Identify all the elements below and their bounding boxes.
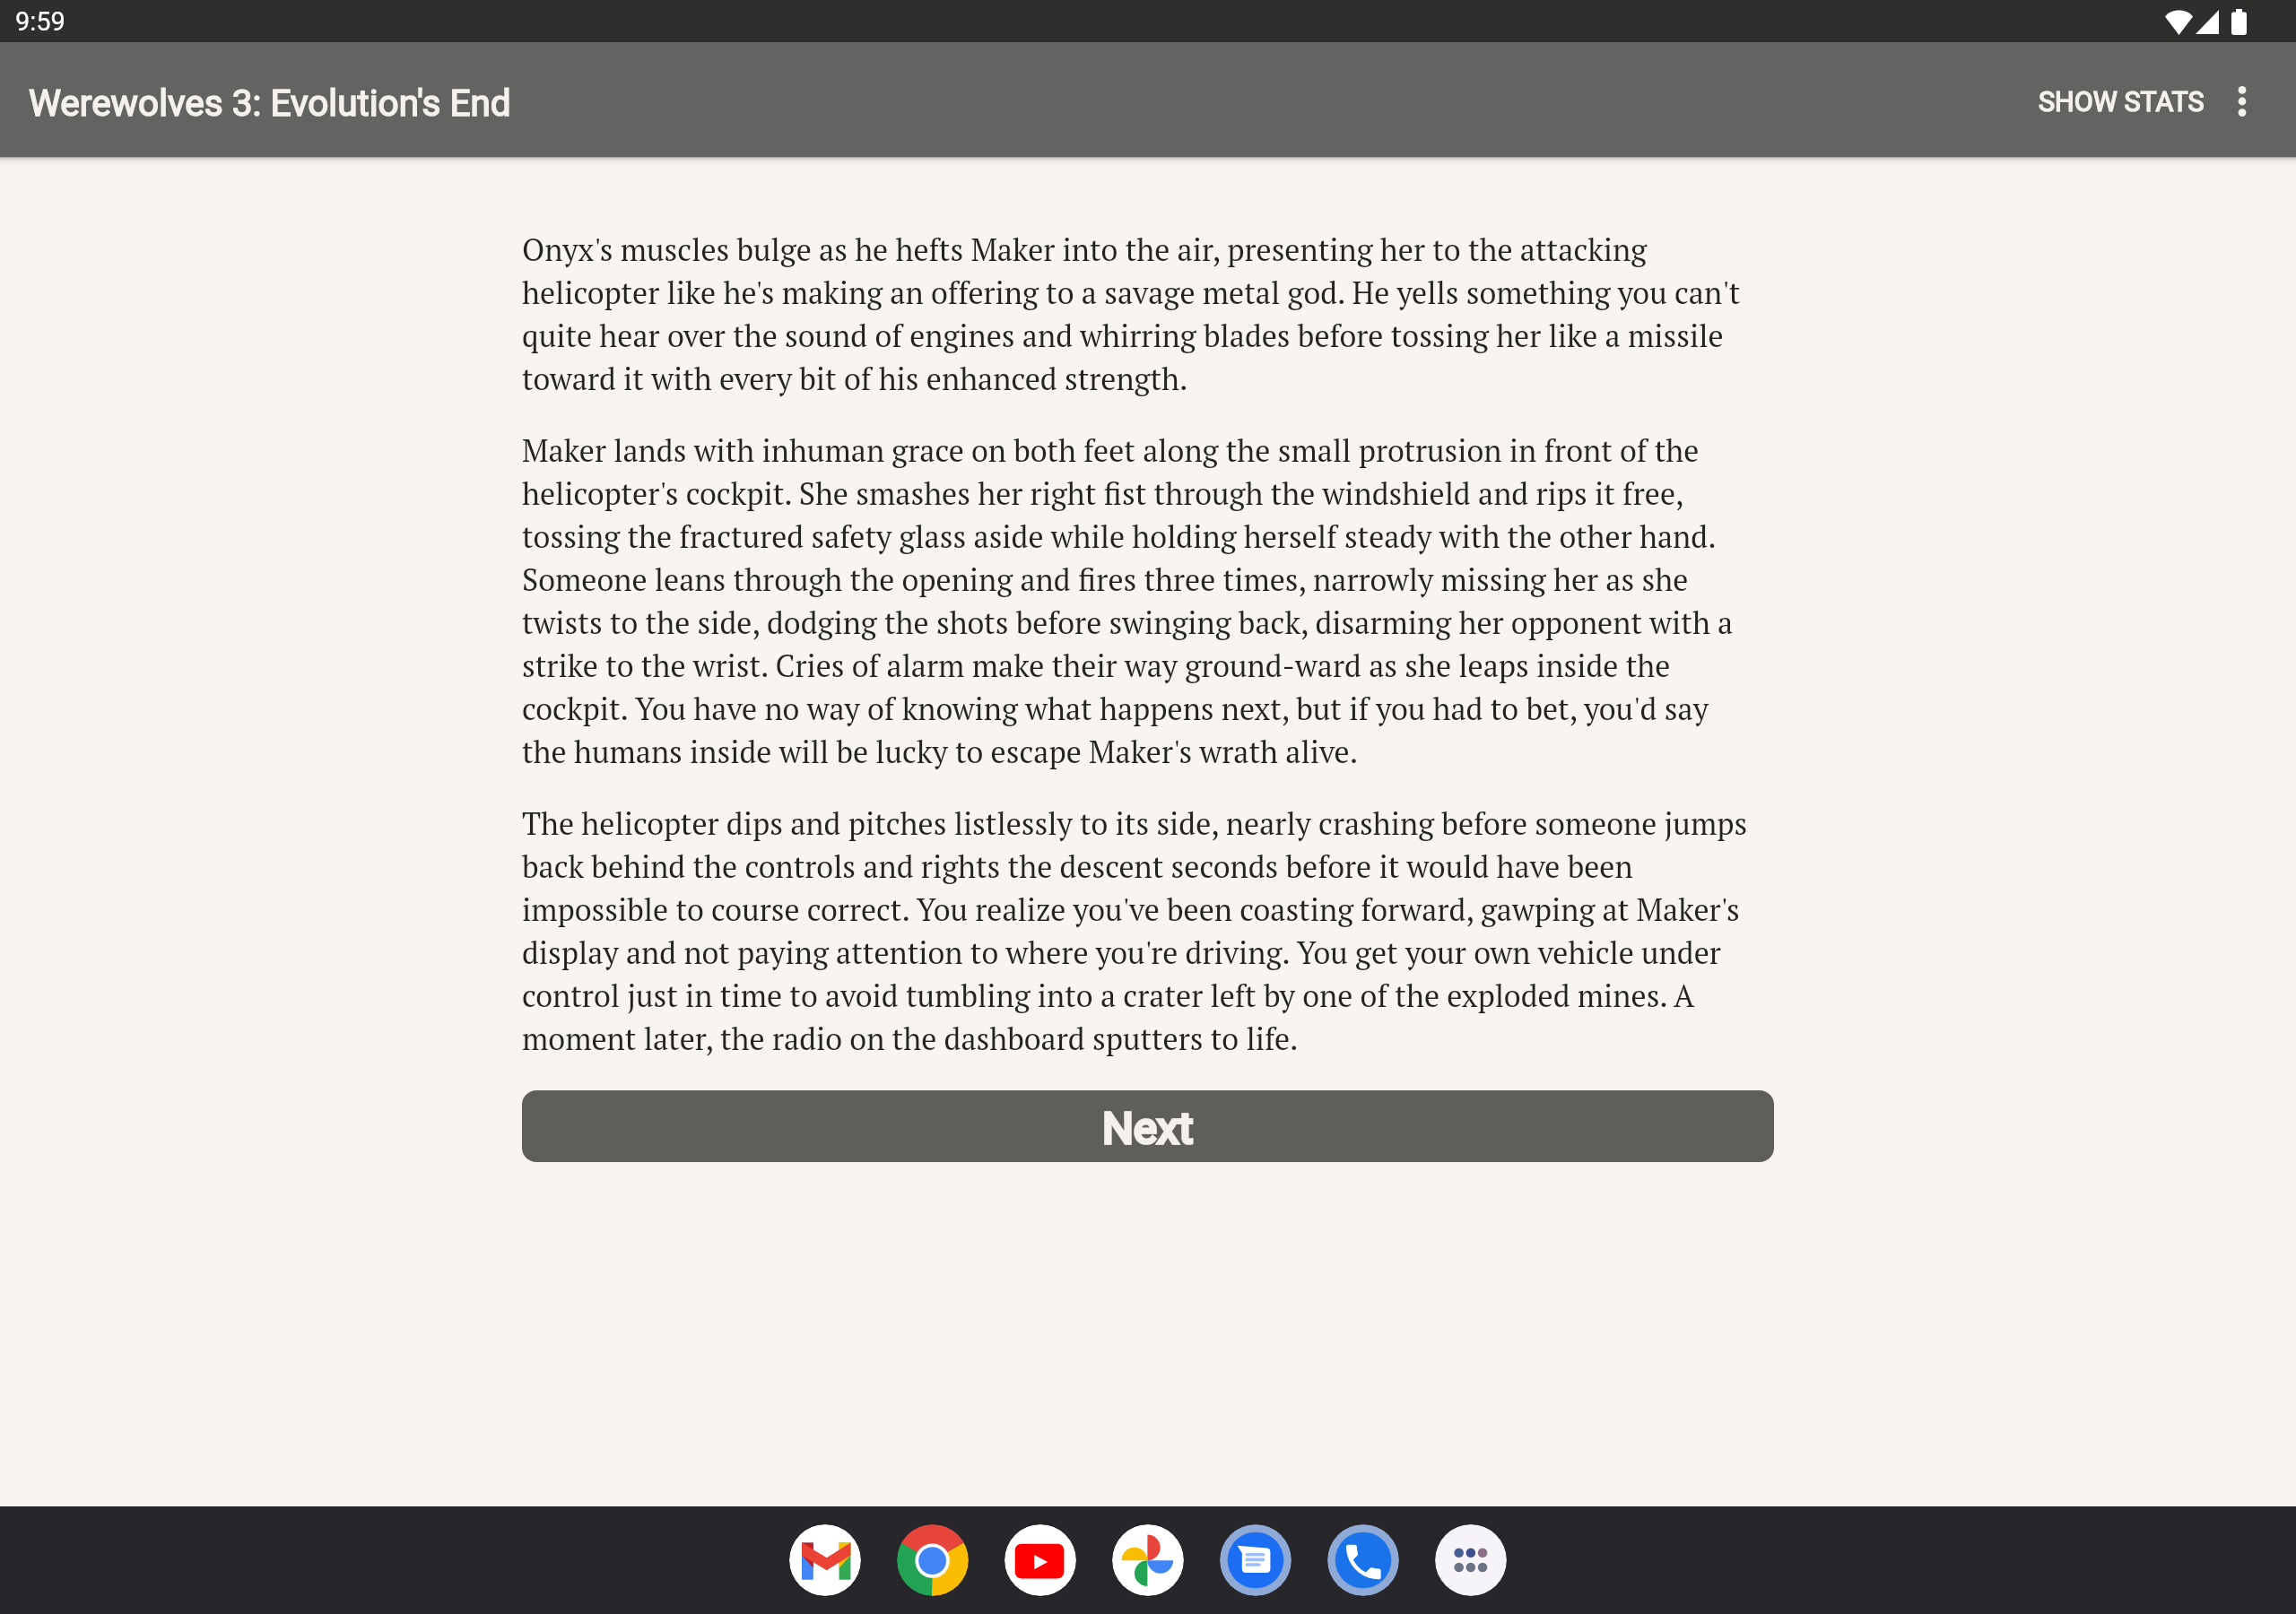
button[interactable]: SHOW STATS bbox=[2013, 58, 2206, 141]
staticText: Werewolves 3: Evolution's End bbox=[29, 82, 511, 124]
button[interactable]: Chrome bbox=[897, 1524, 969, 1596]
button[interactable]: Phone bbox=[1327, 1524, 1399, 1596]
staticText: Next bbox=[1102, 1103, 1194, 1154]
button[interactable]: Gmail bbox=[789, 1524, 861, 1596]
staticText: The helicopter dips and pitches listless… bbox=[522, 801, 1758, 1059]
button[interactable]: Google Photos bbox=[1112, 1524, 1184, 1596]
staticText: SHOW STATS bbox=[2039, 86, 2205, 118]
button[interactable]: YouTube bbox=[1004, 1524, 1076, 1596]
staticText: SHOW STATS bbox=[2039, 86, 2205, 118]
button[interactable]: Messages bbox=[1220, 1524, 1291, 1596]
button[interactable]: More options bbox=[2206, 64, 2278, 135]
button[interactable]: Next bbox=[522, 1090, 1774, 1162]
staticText: 9:59 bbox=[15, 6, 65, 37]
button[interactable]: All apps bbox=[1435, 1524, 1507, 1596]
staticText: Next bbox=[1102, 1103, 1194, 1154]
staticText: Werewolves 3: Evolution's End bbox=[29, 82, 511, 124]
staticText: Onyx's muscles bulge as he hefts Maker i… bbox=[522, 227, 1758, 399]
staticText: Maker lands with inhuman grace on both f… bbox=[522, 428, 1758, 772]
